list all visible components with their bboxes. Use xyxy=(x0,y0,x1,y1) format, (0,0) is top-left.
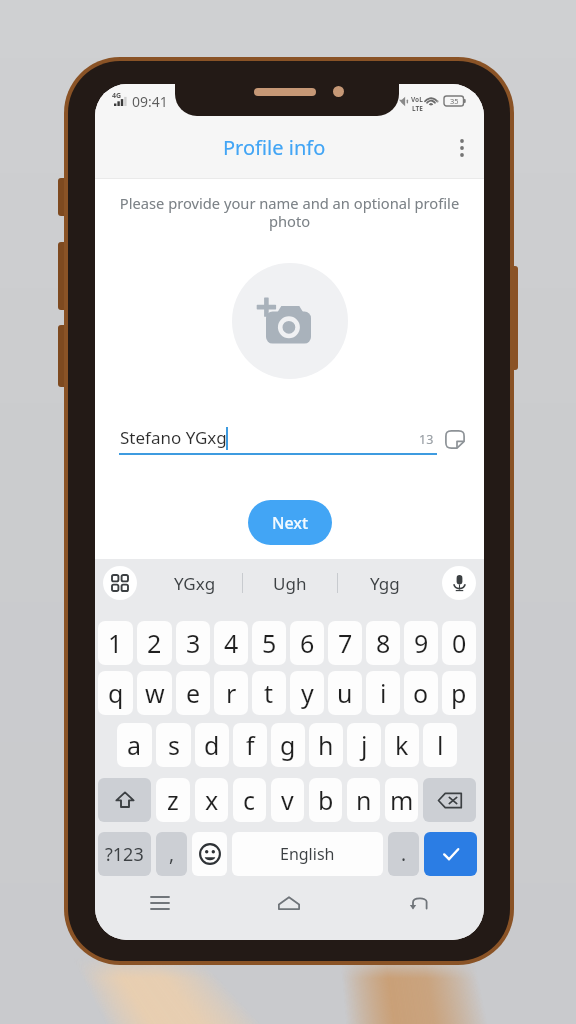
button[interactable]: h xyxy=(309,723,343,767)
button[interactable]: t xyxy=(252,671,286,715)
button[interactable]: 8 xyxy=(366,621,400,665)
button[interactable]: Ugh xyxy=(243,562,337,604)
staticText: YGxg xyxy=(174,572,216,595)
button[interactable]: n xyxy=(347,778,380,822)
staticText: o xyxy=(413,676,429,710)
button[interactable]: j xyxy=(347,723,381,767)
staticText: i xyxy=(380,676,387,710)
button[interactable]: x xyxy=(195,778,228,822)
button[interactable]: Stickers xyxy=(441,425,469,453)
button[interactable]: Done xyxy=(424,832,477,876)
button[interactable]: YGxg xyxy=(147,562,242,604)
staticText: e xyxy=(186,676,201,710)
staticText: d xyxy=(204,728,220,762)
button[interactable]: 5 xyxy=(252,621,286,665)
button[interactable]: r xyxy=(214,671,248,715)
staticText: 4 xyxy=(224,626,239,660)
button[interactable]: v xyxy=(271,778,304,822)
staticText: 09:41 xyxy=(132,92,168,111)
staticText: LTE xyxy=(412,104,423,113)
button[interactable]: l xyxy=(423,723,457,767)
staticText: ?123 xyxy=(105,842,144,867)
button[interactable]: y xyxy=(290,671,324,715)
staticText: c xyxy=(243,783,256,817)
staticText: 1 xyxy=(108,626,123,660)
staticText: g xyxy=(280,728,296,762)
staticText: s xyxy=(168,728,180,762)
button[interactable]: More options xyxy=(440,126,484,170)
button[interactable]: a xyxy=(117,723,152,767)
button[interactable]: e xyxy=(176,671,210,715)
button[interactable]: 3 xyxy=(176,621,210,665)
staticText: n xyxy=(356,783,372,817)
staticText: t xyxy=(264,676,274,710)
button[interactable]: Keyboard modes xyxy=(103,566,137,600)
button[interactable]: g xyxy=(271,723,305,767)
button[interactable]: ?123 xyxy=(98,832,151,876)
button[interactable]: 4 xyxy=(214,621,248,665)
button[interactable]: f xyxy=(233,723,267,767)
staticText: VoL xyxy=(411,95,423,104)
staticText: r xyxy=(226,676,237,710)
staticText: Ugh xyxy=(273,572,307,595)
staticText: z xyxy=(167,783,179,817)
button[interactable]: Home xyxy=(224,880,354,926)
button[interactable]: s xyxy=(156,723,191,767)
button[interactable]: z xyxy=(156,778,190,822)
button[interactable]: 0 xyxy=(442,621,476,665)
button[interactable]: Next xyxy=(248,500,332,545)
button[interactable]: Back xyxy=(354,880,484,926)
button[interactable]: Add profile photo xyxy=(232,263,348,379)
staticText: b xyxy=(318,783,334,817)
staticText: x xyxy=(205,783,219,817)
button[interactable]: Recent apps xyxy=(95,880,224,926)
staticText: 7 xyxy=(338,626,353,660)
button[interactable]: w xyxy=(137,671,172,715)
button[interactable]: 2 xyxy=(137,621,172,665)
button[interactable]: m xyxy=(385,778,418,822)
button[interactable]: Voice input xyxy=(442,566,476,600)
button[interactable]: i xyxy=(366,671,400,715)
staticText: u xyxy=(337,676,353,710)
button[interactable]: 7 xyxy=(328,621,362,665)
staticText: q xyxy=(108,676,124,710)
staticText: v xyxy=(281,783,294,817)
staticText: 8 xyxy=(376,626,391,660)
button[interactable]: d xyxy=(195,723,229,767)
staticText: Profile info xyxy=(223,134,326,161)
staticText: 3 xyxy=(186,626,201,660)
button[interactable]: Shift xyxy=(98,778,151,822)
staticText: m xyxy=(390,783,414,817)
staticText: . xyxy=(401,841,407,867)
button[interactable]: u xyxy=(328,671,362,715)
staticText: 2 xyxy=(147,626,162,660)
button[interactable]: b xyxy=(309,778,342,822)
button[interactable]: English xyxy=(232,832,383,876)
staticText: Ygg xyxy=(370,572,400,595)
staticText: h xyxy=(318,728,334,762)
button[interactable]: c xyxy=(233,778,266,822)
button[interactable]: 9 xyxy=(404,621,438,665)
staticText: 9 xyxy=(414,626,429,660)
staticText: 35 xyxy=(450,96,459,106)
button[interactable]: 1 xyxy=(98,621,133,665)
button[interactable]: p xyxy=(442,671,476,715)
staticText: l xyxy=(437,728,444,762)
button[interactable]: Emoji xyxy=(192,832,227,876)
staticText: 13 xyxy=(419,431,434,448)
button[interactable]: q xyxy=(98,671,133,715)
staticText: 0 xyxy=(452,626,467,660)
button[interactable]: . xyxy=(388,832,419,876)
button[interactable]: 6 xyxy=(290,621,324,665)
button[interactable]: Ygg xyxy=(338,562,432,604)
staticText: , xyxy=(169,841,175,867)
staticText: k xyxy=(395,728,409,762)
staticText: Next xyxy=(272,512,309,534)
button[interactable]: o xyxy=(404,671,438,715)
staticText: 6 xyxy=(300,626,315,660)
button[interactable]: , xyxy=(156,832,187,876)
button[interactable]: Backspace xyxy=(423,778,476,822)
button[interactable]: k xyxy=(385,723,419,767)
staticText: f xyxy=(246,728,255,762)
staticText: Please provide your name and an optional… xyxy=(113,193,466,231)
